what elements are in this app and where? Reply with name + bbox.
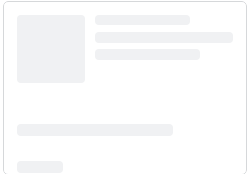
button[interactable]: Loading content [3, 1, 247, 174]
